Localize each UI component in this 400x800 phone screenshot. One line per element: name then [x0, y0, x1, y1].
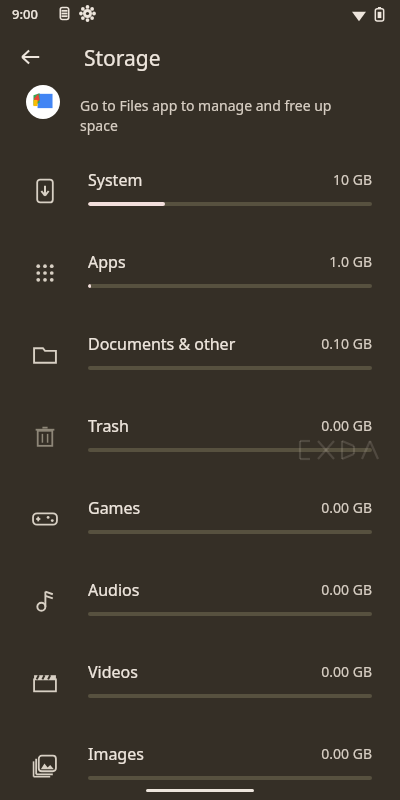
button[interactable]: Images: [0, 734, 400, 800]
button[interactable]: Back: [10, 37, 50, 77]
button[interactable]: Videos: [0, 652, 400, 726]
staticText: 0.00 GB: [252, 744, 372, 763]
staticText: Games: [88, 497, 141, 519]
staticText: Videos: [88, 661, 138, 683]
staticText: Trash: [88, 415, 129, 437]
button[interactable]: Games: [0, 488, 400, 562]
button[interactable]: System: [0, 160, 400, 234]
button[interactable]: Audios: [0, 570, 400, 644]
staticText: 0.00 GB: [252, 580, 372, 599]
button[interactable]: Documents & other: [0, 324, 400, 398]
button[interactable]: Trash: [0, 406, 400, 480]
staticText: 9:00: [12, 5, 38, 23]
staticText: Go to Files app to manage and free up sp…: [80, 96, 380, 135]
staticText: Apps: [88, 251, 126, 273]
staticText: Documents & other: [88, 333, 236, 355]
staticText: 0.00 GB: [252, 498, 372, 517]
staticText: Storage: [84, 44, 161, 73]
staticText: 10 GB: [252, 170, 372, 189]
staticText: 1.0 GB: [252, 252, 372, 271]
staticText: 0.00 GB: [252, 416, 372, 435]
staticText: Images: [88, 743, 144, 765]
staticText: Audios: [88, 579, 140, 601]
button[interactable]: Go to Files app to manage and free up sp…: [0, 80, 400, 142]
staticText: 0.10 GB: [252, 334, 372, 353]
staticText: System: [88, 169, 143, 191]
button[interactable]: Apps: [0, 242, 400, 316]
staticText: 0.00 GB: [252, 662, 372, 681]
